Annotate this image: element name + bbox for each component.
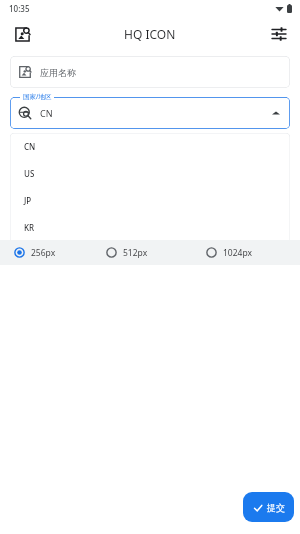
button[interactable]: KR <box>10 214 290 241</box>
button[interactable]: 应用名称 <box>10 56 290 88</box>
staticText: CN <box>24 141 36 152</box>
staticText: 应用名称 <box>40 67 76 78</box>
button[interactable]: CN <box>10 97 290 129</box>
button[interactable]: 512px <box>106 240 200 265</box>
button[interactable]: 1024px <box>206 240 300 265</box>
button[interactable]: Settings <box>266 21 292 47</box>
staticText: 512px <box>123 247 148 259</box>
staticText: CN <box>40 107 53 119</box>
staticText: HQ ICON <box>124 26 176 42</box>
button[interactable]: 提交 <box>243 492 294 522</box>
staticText: 10:35 <box>9 3 30 14</box>
staticText: 提交 <box>267 502 285 513</box>
staticText: KR <box>24 222 35 233</box>
staticText: 国家/地区 <box>23 92 52 101</box>
staticText: US <box>24 168 35 179</box>
button[interactable]: JP <box>10 187 290 214</box>
staticText: JP <box>24 195 32 206</box>
button[interactable]: CN <box>10 133 290 160</box>
staticText: 256px <box>31 247 56 259</box>
button[interactable]: 256px <box>14 240 100 265</box>
other: Collapse <box>272 109 280 117</box>
button[interactable]: Pick image <box>9 21 35 47</box>
button[interactable]: US <box>10 160 290 187</box>
staticText: 1024px <box>223 247 253 259</box>
